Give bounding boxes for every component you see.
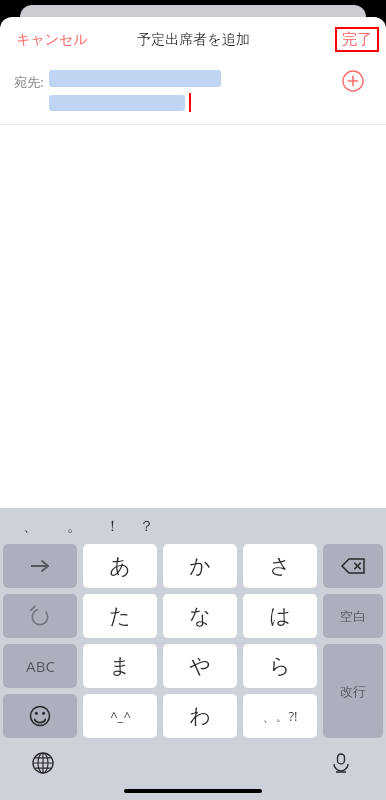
button[interactable]: ま <box>83 644 157 688</box>
button[interactable]: Dictation <box>324 746 358 780</box>
button[interactable]: は <box>243 594 317 638</box>
button[interactable]: Add contact <box>340 68 366 94</box>
button[interactable]: ^_^ <box>83 694 157 738</box>
staticText: ABC <box>26 656 55 676</box>
button[interactable]: ABC <box>3 644 77 688</box>
staticText: さ <box>269 553 291 579</box>
button[interactable]: Delete <box>323 544 383 588</box>
staticText: あ <box>109 553 131 579</box>
staticText: 完了 <box>342 30 372 49</box>
button[interactable]: た <box>83 594 157 638</box>
staticText: キャンセル <box>16 31 88 49</box>
button[interactable]: キャンセル <box>10 25 94 55</box>
staticText: は <box>269 603 291 629</box>
staticText: 予定出席者を追加 <box>137 31 250 49</box>
button[interactable]: 、 <box>8 517 52 536</box>
staticText: か <box>189 553 211 579</box>
button[interactable]: 完了 <box>335 27 379 52</box>
staticText: な <box>189 603 211 629</box>
button[interactable]: Emoji <box>3 694 77 738</box>
button[interactable]: ！ <box>96 517 128 536</box>
staticText: ら <box>269 653 291 679</box>
staticText: ま <box>109 653 131 679</box>
button[interactable]: や <box>163 644 237 688</box>
staticText: わ <box>189 703 211 729</box>
staticText: 空白 <box>340 608 366 624</box>
button[interactable]: な <box>163 594 237 638</box>
button[interactable]: Change keyboard <box>26 746 60 780</box>
button[interactable]: Undo <box>3 594 77 638</box>
staticText: 。 <box>67 517 82 536</box>
staticText: た <box>109 603 131 629</box>
button[interactable]: 改行 <box>323 644 383 738</box>
staticText: 、 <box>23 517 38 536</box>
button[interactable]: 、。?! <box>243 694 317 738</box>
button[interactable]: さ <box>243 544 317 588</box>
staticText: ^_^ <box>110 707 131 725</box>
button[interactable]: ら <box>243 644 317 688</box>
button[interactable]: 。 <box>52 517 96 536</box>
button[interactable]: あ <box>83 544 157 588</box>
button[interactable]: 空白 <box>323 594 383 638</box>
button[interactable]: Next candidate <box>3 544 77 588</box>
staticText: 、。?! <box>262 707 298 725</box>
button[interactable]: わ <box>163 694 237 738</box>
staticText: や <box>189 653 211 679</box>
button[interactable]: か <box>163 544 237 588</box>
staticText: ？ <box>139 517 154 536</box>
staticText: 宛先: <box>14 73 44 91</box>
staticText: ！ <box>105 517 120 536</box>
staticText: 改行 <box>340 683 366 699</box>
button[interactable]: ？ <box>128 517 164 536</box>
